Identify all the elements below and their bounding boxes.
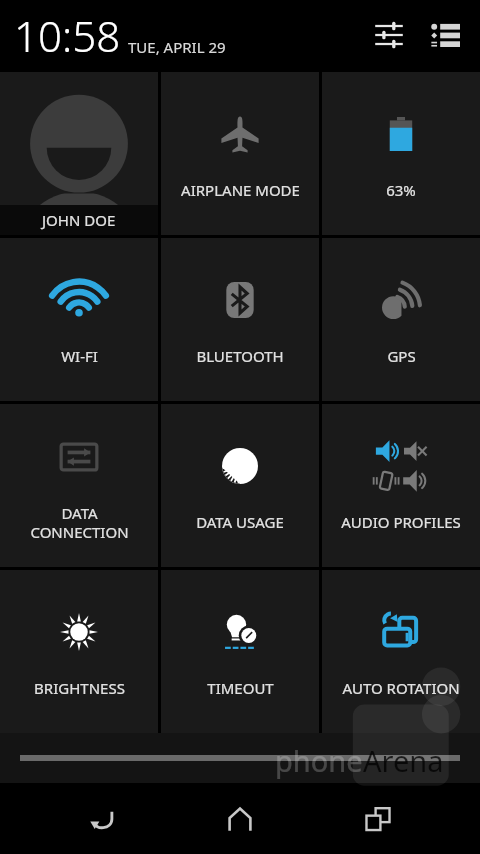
button[interactable]: TIMEOUT: [161, 570, 319, 733]
button[interactable]: AUDIO PROFILES: [322, 404, 480, 567]
button[interactable]: DATA CONNECTION: [0, 404, 158, 567]
button[interactable]: AIRPLANE MODE: [161, 72, 319, 235]
button[interactable]: DATA USAGE: [161, 404, 319, 567]
button[interactable]: Home: [204, 783, 276, 854]
staticText: AIRPLANE MODE: [181, 180, 300, 200]
staticText: phone: [275, 741, 363, 780]
staticText: 10:58: [14, 7, 121, 64]
button[interactable]: JOHN DOE: [0, 72, 158, 235]
staticText: AUDIO PROFILES: [341, 512, 461, 532]
staticText: TIMEOUT: [207, 678, 274, 698]
staticText: JOHN DOE: [42, 210, 116, 230]
staticText: WI-FI: [61, 346, 98, 366]
staticText: Arena: [363, 741, 444, 780]
staticText: AUTO ROTATION: [342, 678, 460, 698]
button[interactable]: AUTO ROTATION: [322, 570, 480, 733]
button[interactable]: 63%: [322, 72, 480, 235]
staticText: DATA CONNECTION: [30, 503, 129, 542]
button[interactable]: Settings: [366, 12, 412, 58]
button[interactable]: GPS: [322, 238, 480, 401]
staticText: GPS: [387, 346, 416, 366]
staticText: DATA USAGE: [196, 512, 284, 532]
button[interactable]: Notifications: [422, 12, 468, 58]
button[interactable]: BLUETOOTH: [161, 238, 319, 401]
button[interactable]: WI-FI: [0, 238, 158, 401]
button[interactable]: Recent apps: [342, 783, 414, 854]
staticText: BLUETOOTH: [196, 346, 284, 366]
staticText: 63%: [386, 180, 416, 200]
button[interactable]: Back: [66, 783, 138, 854]
staticText: BRIGHTNESS: [34, 678, 125, 698]
button[interactable]: JOHN DOE: [0, 72, 158, 235]
button[interactable]: BRIGHTNESS: [0, 570, 158, 733]
staticText: TUE, APRIL 29: [128, 37, 226, 57]
button[interactable]: Drag handle: [20, 755, 460, 761]
